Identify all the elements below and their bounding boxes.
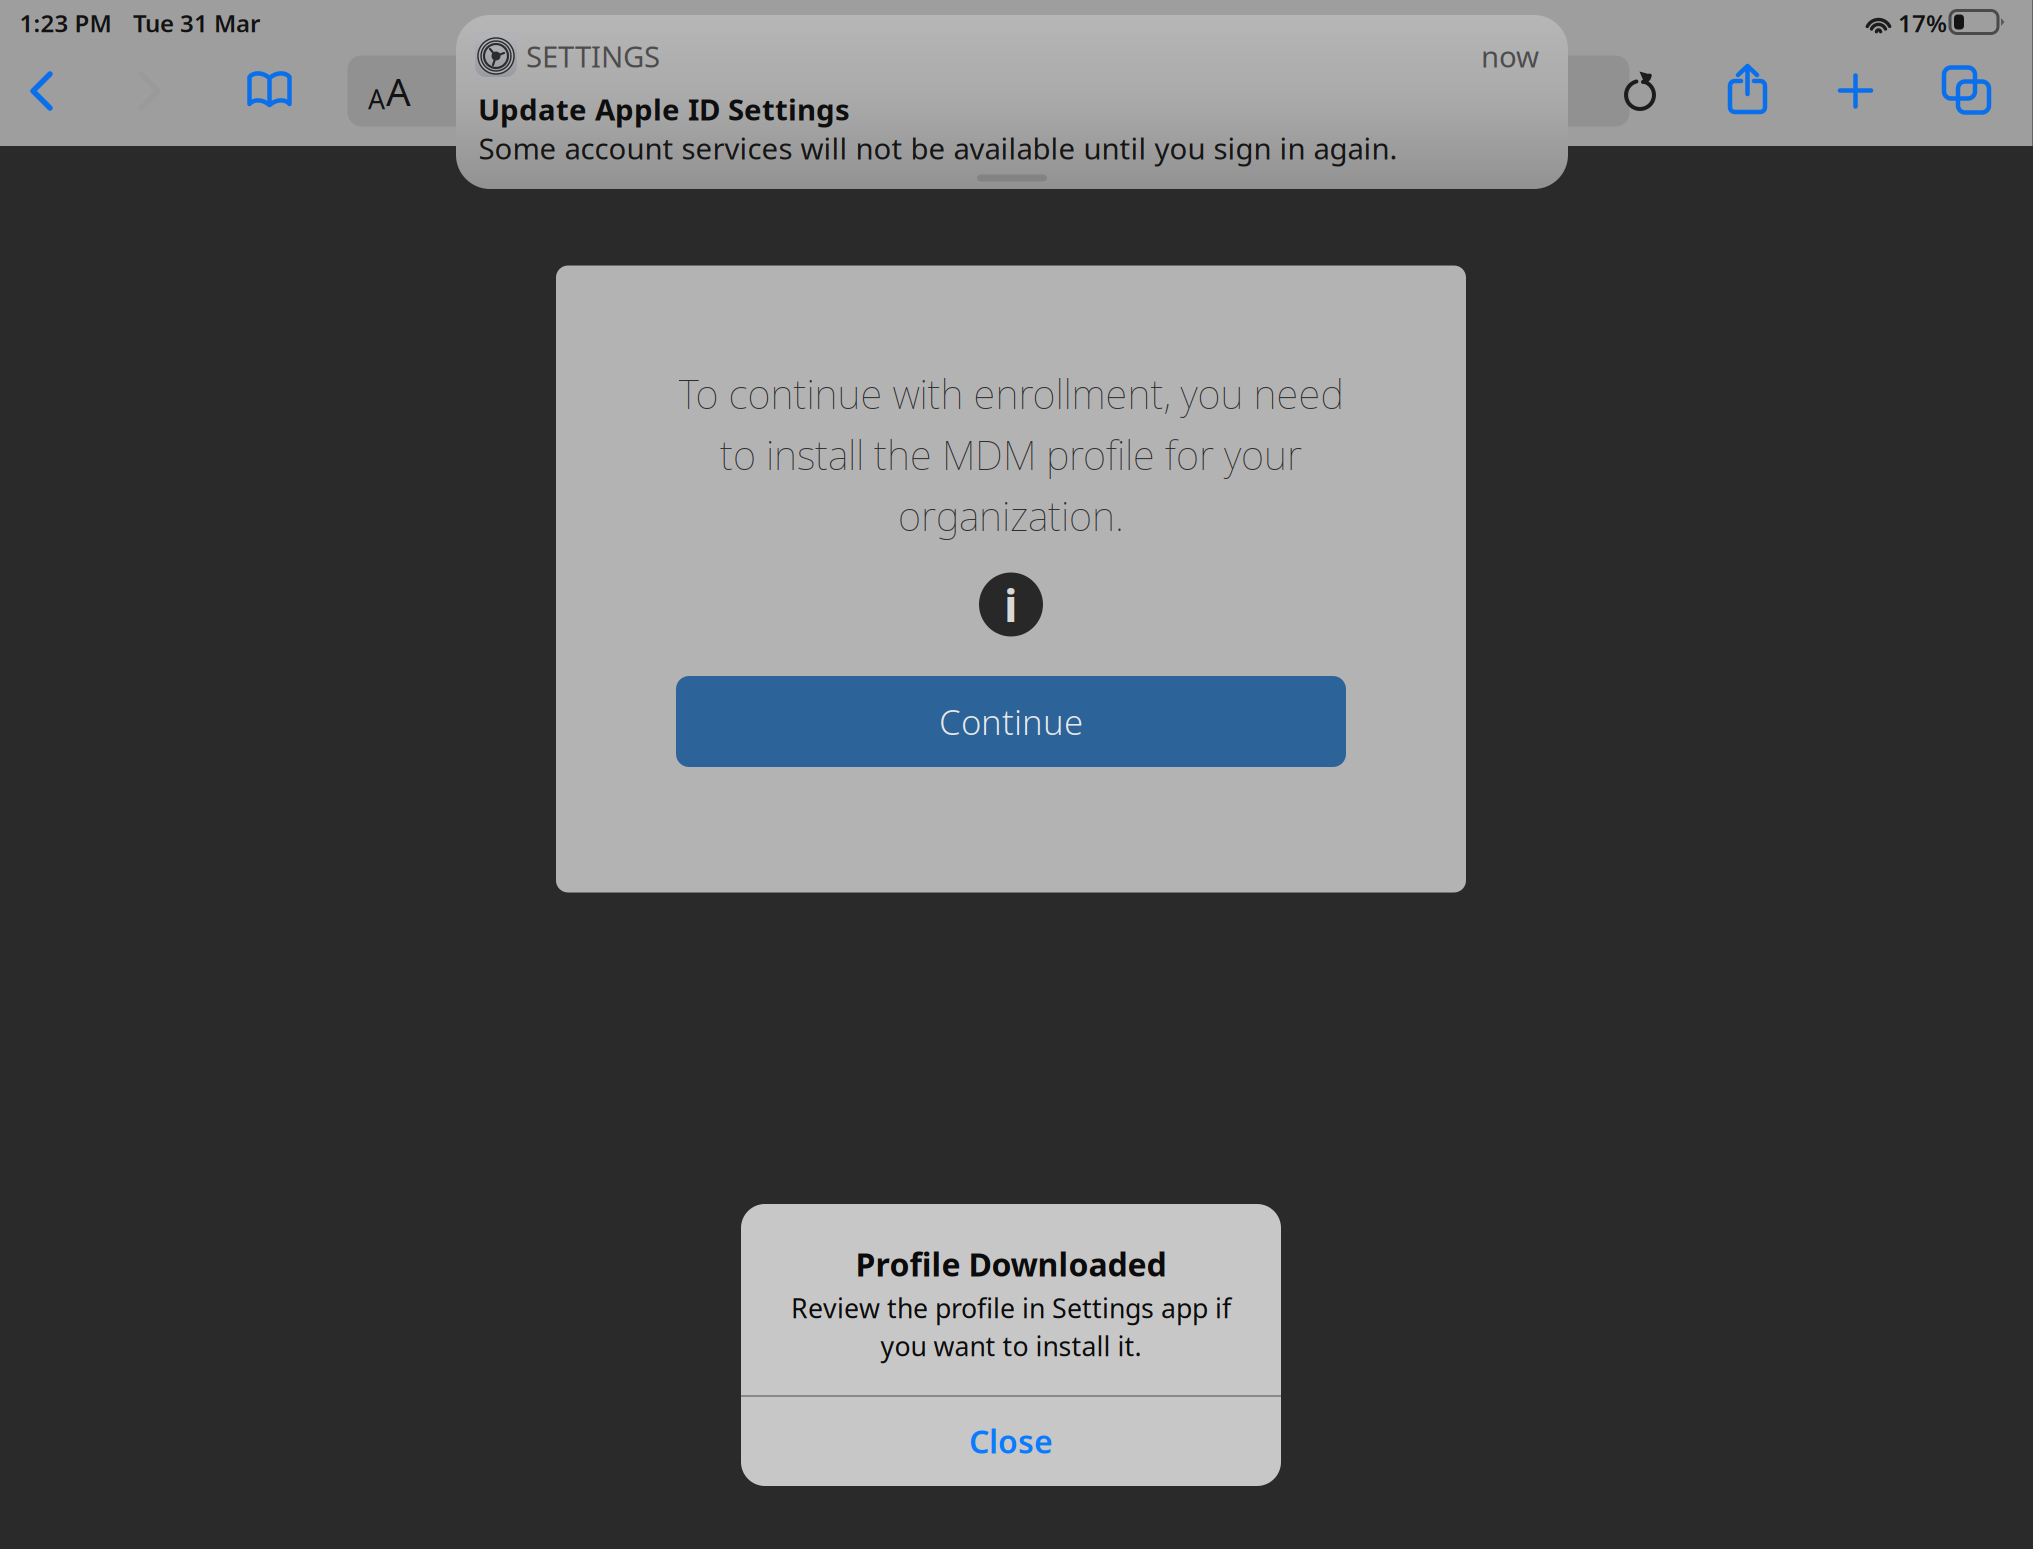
staticText: Review the profile in Settings app if [791,1290,1231,1326]
button[interactable]: Address and Search [347,55,1629,126]
staticText: Continue [939,698,1083,744]
staticText: i [1004,574,1018,635]
staticText: organization. [898,489,1124,542]
button[interactable]: Bookmarks [223,45,315,137]
staticText: now [1481,36,1539,75]
staticText: SETTINGS [526,36,660,75]
staticText: Close [969,1420,1053,1462]
staticText: to install the MDM profile for your [720,428,1302,481]
button[interactable]: SETTINGS [456,15,1568,189]
button[interactable]: Continue [676,676,1346,767]
button[interactable]: Page Settings [353,60,425,122]
button[interactable]: Back [0,45,85,137]
button[interactable]: Close [741,1397,1281,1485]
staticText: Some account services will not be availa… [478,128,1397,167]
button[interactable]: Share [1701,43,1793,135]
staticText: Profile Downloaded [855,1243,1166,1285]
staticText: A [386,65,411,117]
staticText: Update Apple ID Settings [478,89,850,128]
button[interactable]: New Tab [1809,45,1901,137]
staticText: 1:23 PM [19,7,111,39]
staticText: To continue with enrollment, you need [678,367,1343,420]
button[interactable]: Reload [1604,53,1676,125]
staticText: 17% [1898,7,1947,39]
staticText: A [368,81,385,117]
button[interactable]: Show Tabs [1920,44,2012,136]
staticText: you want to install it. [880,1328,1141,1364]
staticText: Tue 31 Mar [133,7,260,39]
